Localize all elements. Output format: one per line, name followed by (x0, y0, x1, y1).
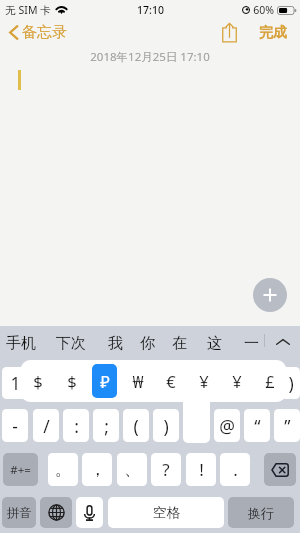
button[interactable]: Voice input (76, 497, 103, 528)
button[interactable]: ₽ (92, 364, 117, 398)
button[interactable]: More candidates (266, 326, 300, 358)
button[interactable]: “ (244, 409, 270, 442)
staticText: . (233, 458, 238, 481)
staticText: 1 (10, 371, 21, 395)
button[interactable]: € (158, 364, 183, 398)
staticText: 2018年12月25日 17:10 (0, 49, 300, 65)
button[interactable]: $ (25, 364, 51, 398)
staticText: 换行 (248, 505, 274, 521)
staticText: - (12, 414, 18, 438)
button[interactable]: 、 (117, 453, 147, 486)
staticText: 无 SIM 卡 (5, 3, 51, 17)
staticText: € (166, 370, 176, 392)
staticText: £ (265, 370, 275, 392)
staticText: ¥ (232, 370, 242, 392)
staticText: : (74, 414, 79, 438)
staticText: ! (199, 458, 204, 481)
button[interactable]: ? (151, 453, 181, 486)
button[interactable]: Switch keyboard (40, 497, 72, 528)
button[interactable]: / (33, 409, 59, 442)
button[interactable]: 一 (239, 326, 264, 357)
staticText: 17:10 (137, 3, 164, 17)
button[interactable]: 下次 (51, 326, 91, 357)
staticText: 拼音 (7, 505, 32, 521)
staticText: @ (219, 414, 235, 438)
button[interactable]: $ (59, 364, 84, 398)
button[interactable]: : (63, 409, 89, 442)
staticText: ( (133, 414, 139, 438)
staticText: $ (67, 370, 77, 392)
button[interactable]: 。 (48, 453, 78, 486)
button[interactable]: ! (186, 453, 216, 486)
staticText: ) (288, 371, 294, 395)
staticText: 空格 (153, 504, 180, 521)
staticText: 我 (108, 334, 123, 353)
button[interactable]: @ (214, 409, 240, 442)
button[interactable]: 在 (167, 326, 192, 357)
button[interactable]: Share (217, 20, 242, 45)
button[interactable]: ) (153, 409, 179, 442)
button[interactable]: £ (257, 364, 282, 398)
button[interactable]: - (2, 409, 28, 442)
button[interactable]: 你 (135, 326, 160, 357)
button[interactable]: 完成 (242, 21, 300, 45)
staticText: ? (162, 458, 170, 481)
button[interactable]: 拼音 (2, 497, 36, 528)
staticText: ₽ (100, 370, 110, 392)
staticText: 一 (244, 334, 259, 353)
staticText: 下次 (56, 334, 86, 353)
button[interactable]: Backspace (264, 453, 296, 486)
button[interactable]: 这 (202, 326, 227, 357)
button[interactable]: ¥ (224, 364, 249, 398)
button[interactable]: ) (281, 367, 300, 399)
staticText: “ (254, 414, 261, 438)
button[interactable]: 我 (103, 326, 128, 357)
button[interactable]: Add (253, 278, 287, 312)
staticText: 在 (172, 334, 187, 353)
staticText: / (43, 414, 50, 438)
button[interactable]: ( (123, 409, 149, 442)
button[interactable]: #+= (3, 453, 38, 486)
staticText: #+= (10, 462, 31, 478)
button[interactable]: ， (82, 453, 112, 486)
staticText: ; (104, 414, 109, 438)
button[interactable]: ₩ (125, 364, 150, 398)
button[interactable]: 1 (2, 367, 28, 399)
staticText: 手机 (6, 334, 36, 353)
button[interactable]: ; (93, 409, 119, 442)
button[interactable]: ¥ (191, 364, 216, 398)
button[interactable]: . (220, 453, 250, 486)
staticText: 完成 (259, 24, 287, 42)
button[interactable]: 手机 (1, 326, 41, 357)
staticText: ₩ (132, 370, 144, 392)
staticText: 这 (207, 334, 222, 353)
staticText: 。 (55, 459, 72, 480)
button[interactable]: 空格 (108, 497, 224, 528)
staticText: 备忘录 (22, 23, 67, 42)
button[interactable]: ” (274, 409, 300, 442)
staticText: ” (284, 414, 291, 438)
staticText: 、 (124, 459, 141, 480)
staticText: ， (89, 459, 106, 480)
button[interactable]: 换行 (228, 497, 294, 528)
staticText: 60% (253, 3, 274, 17)
staticText: $ (33, 370, 43, 392)
staticText: 你 (140, 334, 155, 353)
button[interactable]: 备忘录 (0, 20, 75, 45)
staticText: ¥ (199, 370, 209, 392)
staticText: ) (163, 414, 169, 438)
